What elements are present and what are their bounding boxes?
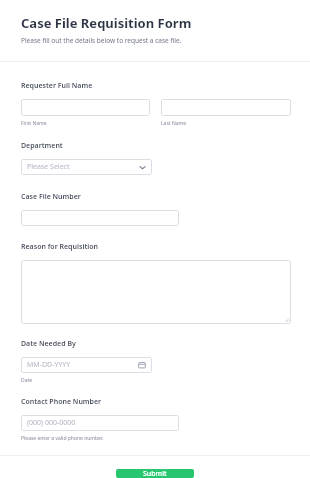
button[interactable]: Date Needed By input [21,357,152,373]
staticText: Please Select [27,162,139,172]
staticText: First Name [21,120,47,127]
button[interactable]: Reason for Requisition text area [21,260,291,324]
staticText: Please fill out the details below to req… [21,36,182,45]
button[interactable]: Department dropdown [21,159,152,175]
button[interactable]: Case File Number input [21,210,179,226]
staticText: Last Name [161,120,187,127]
staticText: (000) 000-0000 [27,418,173,428]
button[interactable]: Submit [116,469,194,478]
button[interactable]: Contact Phone Number input [21,415,179,431]
staticText: Requester Full Name [21,81,93,91]
staticText: Case File Requisition Form [21,14,192,32]
staticText: Date Needed By [21,339,76,349]
staticText: Reason for Requisition [21,242,98,252]
staticText: Case File Number [21,192,81,202]
staticText: Date [21,377,33,384]
staticText: MM-DD-YYYY [27,360,138,370]
staticText: Please enter a valid phone number. [21,435,104,442]
staticText: Submit [143,469,167,478]
button[interactable]: Last Name input [161,99,291,116]
button[interactable]: First Name input [21,99,150,116]
staticText: Contact Phone Number [21,397,102,407]
staticText: Department [21,141,63,151]
